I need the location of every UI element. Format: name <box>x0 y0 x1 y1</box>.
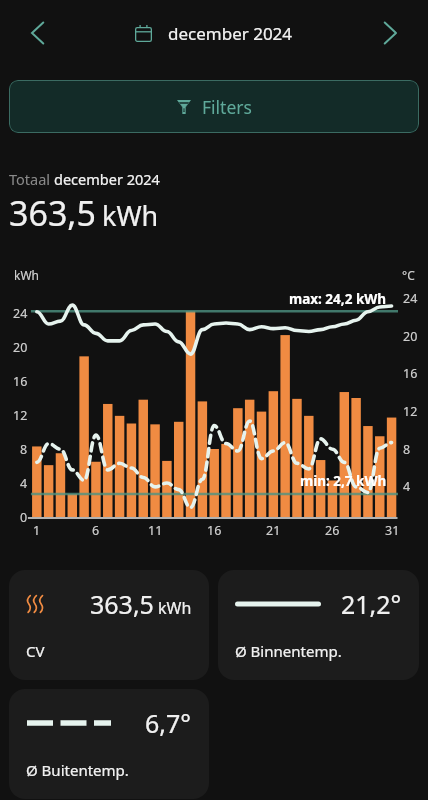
staticText: Ø Binnentemp. <box>235 641 342 661</box>
staticText: december 2024 <box>54 169 160 189</box>
staticText: Ø Buitentemp. <box>26 760 129 780</box>
staticText: kWh <box>158 597 192 619</box>
staticText: 6 <box>92 522 100 539</box>
staticText: 12 <box>403 403 418 420</box>
staticText: 24 <box>403 290 418 307</box>
staticText: 20 <box>403 328 418 345</box>
staticText: 16 <box>207 522 222 539</box>
staticText: kWh <box>14 267 39 283</box>
staticText: 1 <box>33 522 41 539</box>
staticText: Totaal <box>9 169 54 189</box>
staticText: 20 <box>13 339 28 356</box>
staticText: 11 <box>148 522 163 539</box>
staticText: 6,7° <box>145 706 192 740</box>
staticText: 16 <box>403 365 418 382</box>
staticText: 8 <box>403 441 411 458</box>
staticText: °C <box>402 267 415 283</box>
button[interactable]: 6,7° <box>9 689 209 799</box>
staticText: 21,2° <box>341 587 402 621</box>
staticText: 16 <box>13 373 28 390</box>
staticText: 0 <box>20 509 28 526</box>
staticText: min: 2,7 kWh <box>300 472 387 490</box>
staticText: 24 <box>13 305 28 322</box>
staticText: 21 <box>266 522 281 539</box>
staticText: 26 <box>325 522 340 539</box>
button[interactable]: december 2024 <box>135 0 293 66</box>
button[interactable]: Previous month <box>0 0 76 66</box>
staticText: 4 <box>20 475 28 492</box>
button[interactable]: 363,5 <box>9 570 209 680</box>
staticText: 31 <box>385 522 400 539</box>
button[interactable]: Next month <box>352 0 428 66</box>
staticText: 12 <box>13 407 28 424</box>
staticText: 363,5 <box>90 587 154 621</box>
staticText: CV <box>26 641 45 661</box>
staticText: 4 <box>403 478 411 495</box>
staticText: max: 24,2 kWh <box>289 290 387 308</box>
staticText: kWh <box>102 197 159 234</box>
staticText: Filters <box>202 95 252 119</box>
staticText: december 2024 <box>168 22 293 45</box>
button[interactable]: Filters <box>9 80 419 133</box>
button[interactable]: 21,2° <box>218 570 419 680</box>
staticText: 363,5 <box>9 190 96 236</box>
staticText: 8 <box>20 441 28 458</box>
